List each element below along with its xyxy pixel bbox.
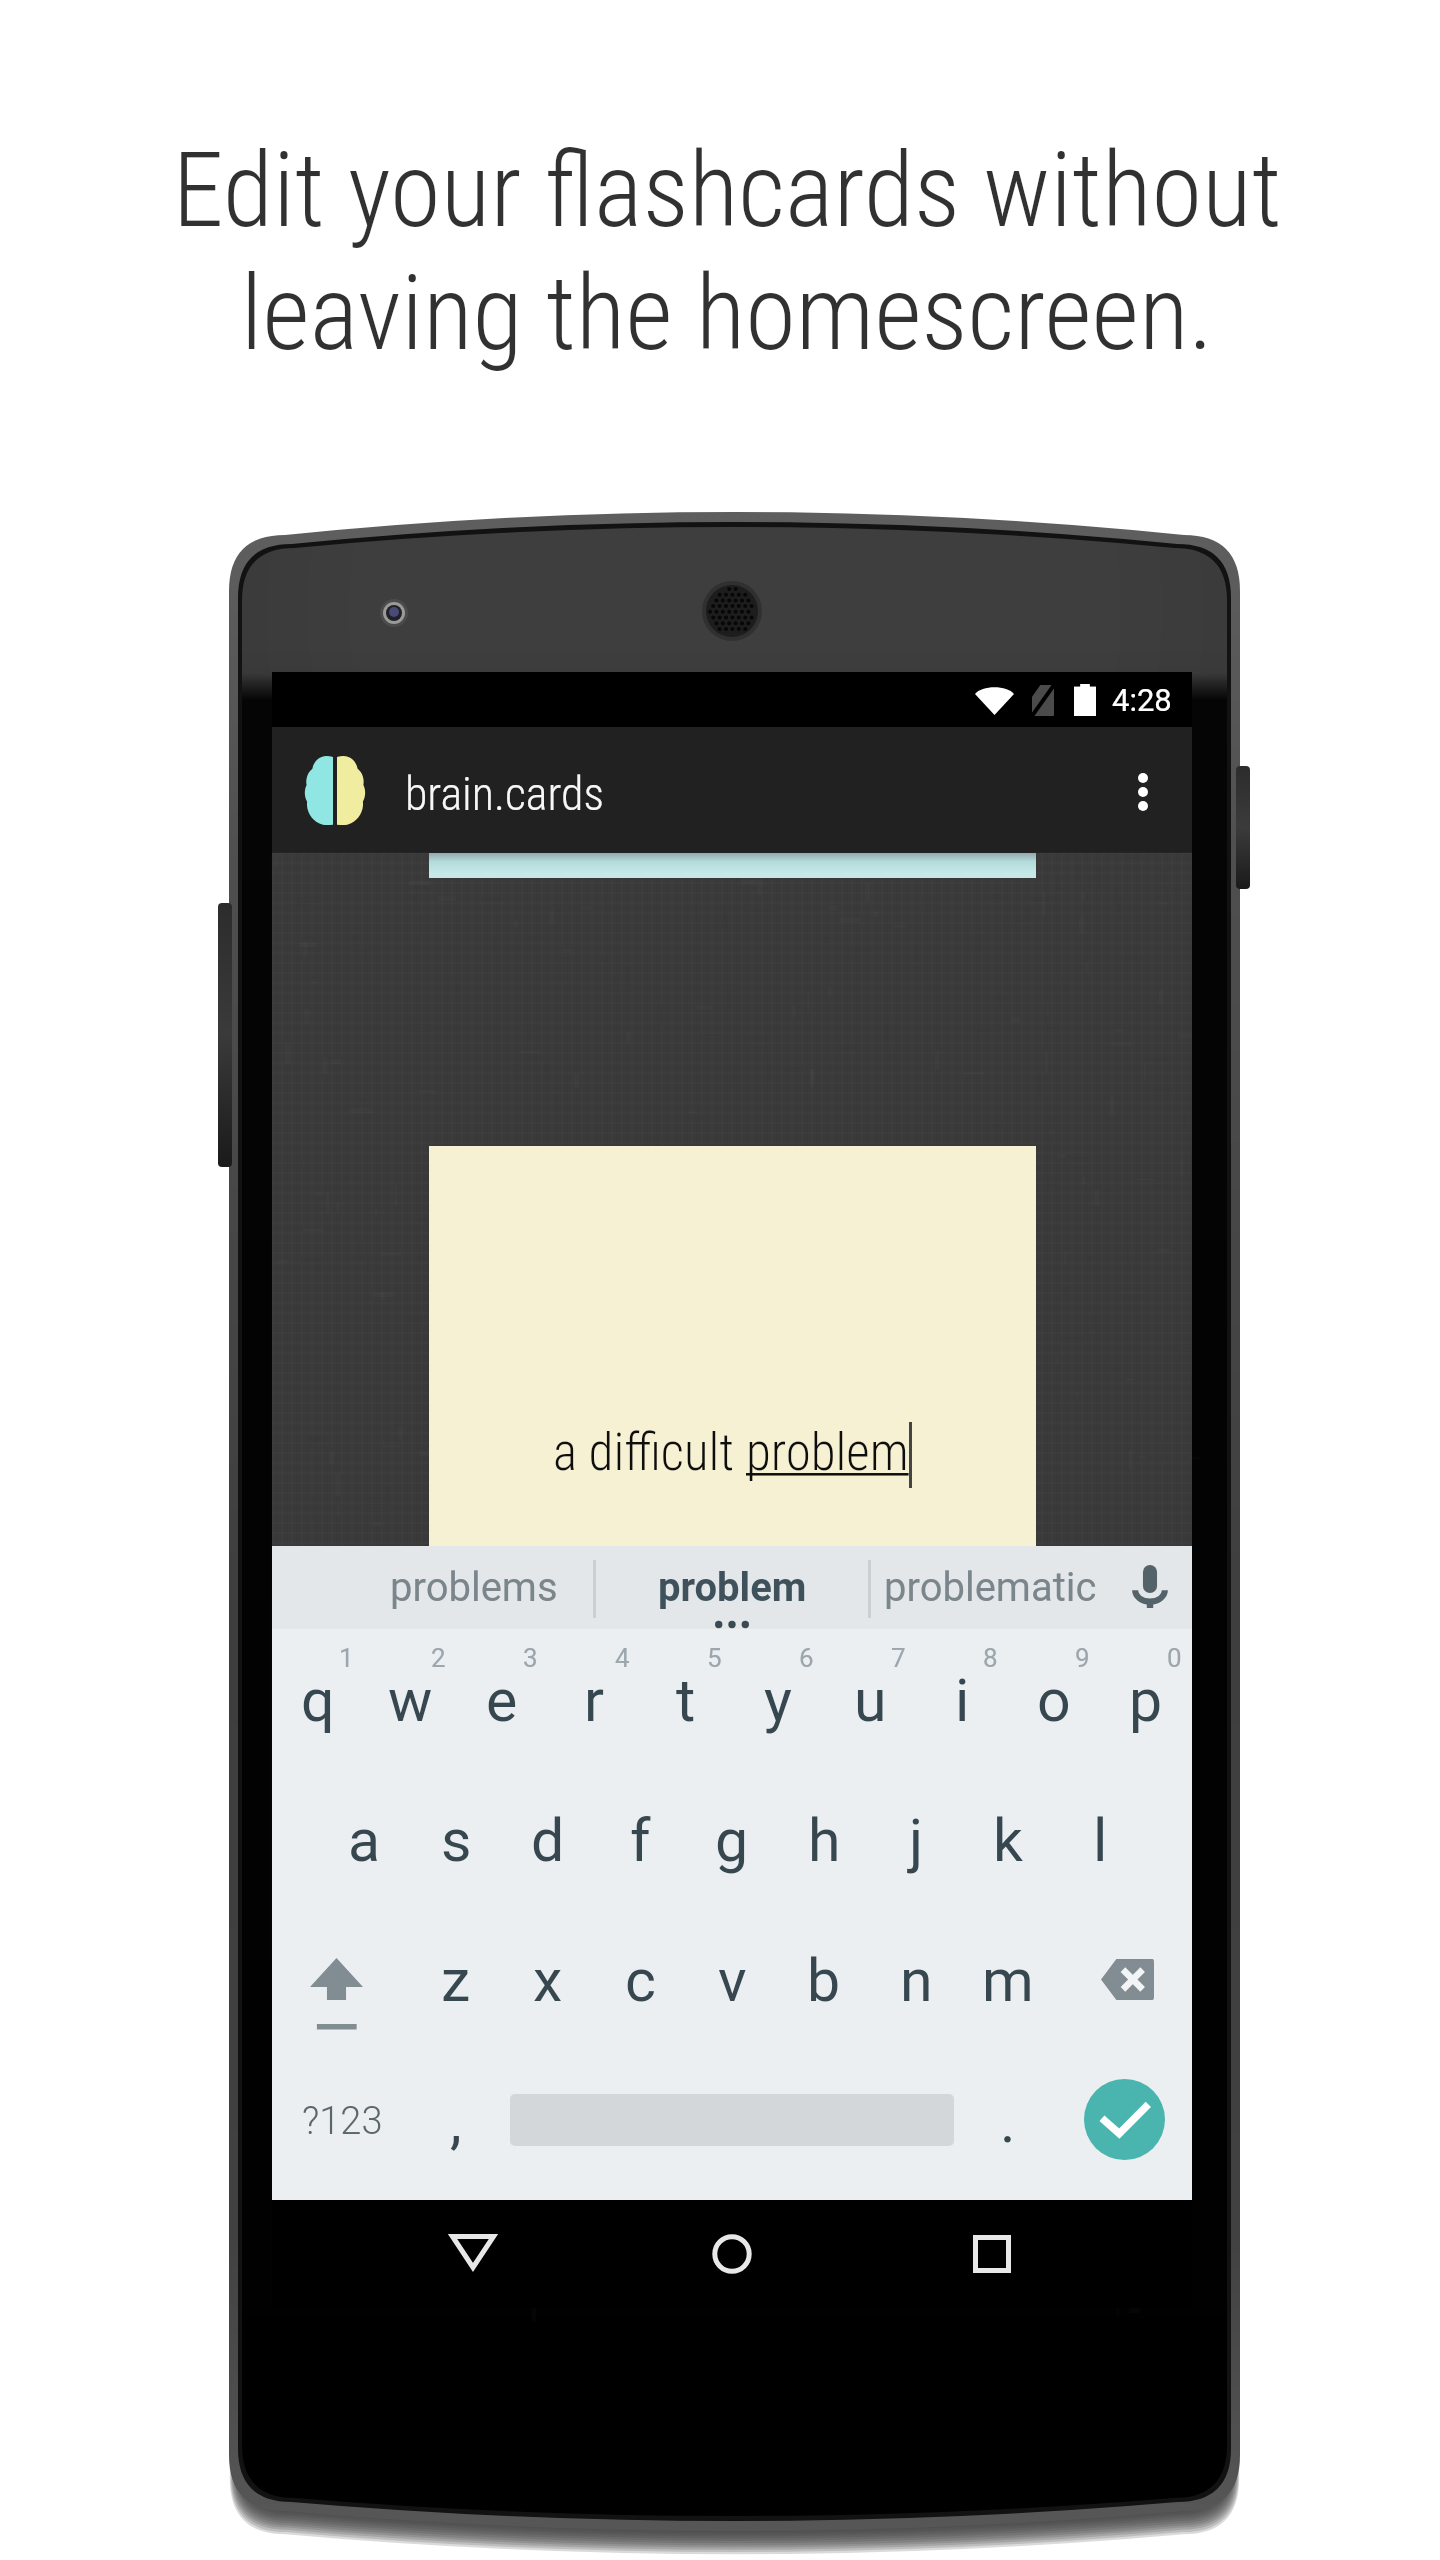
staticText: 8 [983,1643,998,1673]
button[interactable]: m [962,1909,1054,2052]
staticText: p [1129,1666,1163,1735]
button[interactable]: Enter [1050,2058,1198,2200]
button[interactable]: Home [672,2200,792,2308]
staticText: 1 [339,1643,354,1673]
staticText: h [808,1806,841,1875]
staticText: problems [390,1564,558,1611]
button[interactable]: n [870,1909,962,2052]
staticText: a difficult [553,1423,746,1483]
button[interactable]: f [594,1769,686,1912]
staticText: 5 [707,1643,722,1673]
button[interactable]: k [962,1769,1054,1912]
staticText: ?123 [302,2099,383,2144]
button[interactable]: , [410,2050,502,2192]
staticText: problematic [884,1564,1097,1611]
button[interactable]: w [364,1629,456,1772]
staticText: 2 [431,1643,446,1673]
staticText: u [854,1666,887,1735]
button[interactable]: Backspace [1054,1909,1192,2052]
staticText: problem [658,1564,807,1611]
staticText: f [630,1806,651,1875]
button[interactable]: c [594,1909,686,2052]
staticText: 7 [891,1643,906,1673]
staticText: g [715,1806,749,1875]
staticText: r [584,1666,604,1735]
button[interactable]: p [1100,1629,1192,1772]
button[interactable]: x [502,1909,594,2052]
button[interactable]: d [502,1769,594,1912]
staticText: d [531,1806,565,1875]
button[interactable]: Back [413,2200,533,2308]
staticText: a [348,1806,381,1875]
staticText: , [450,2087,462,2156]
staticText: z [441,1946,471,2015]
button[interactable]: g [686,1769,778,1912]
staticText: problem [746,1423,909,1483]
button[interactable]: u [824,1629,916,1772]
button[interactable]: problem [596,1546,868,1629]
button[interactable]: ?123 [272,2050,412,2192]
button[interactable]: o [1008,1629,1100,1772]
staticText: e [486,1666,518,1735]
button[interactable]: Shift [272,1909,410,2052]
button[interactable]: More options [1095,742,1191,838]
button[interactable]: problematic [871,1546,1109,1629]
staticText: b [807,1946,841,2015]
button[interactable]: e [456,1629,548,1772]
staticText: l [1093,1806,1108,1875]
button[interactable]: t [640,1629,732,1772]
button[interactable]: v [686,1909,778,2052]
button[interactable]: j [870,1769,962,1912]
button[interactable]: Recent apps [932,2200,1052,2308]
staticText: . [1000,2087,1016,2156]
staticText: 4:28 [1112,682,1172,718]
staticText: i [955,1666,970,1735]
staticText: s [441,1806,472,1875]
button[interactable]: q [272,1629,364,1772]
staticText: j [909,1806,924,1875]
staticText: y [764,1666,792,1735]
button[interactable]: h [778,1769,870,1912]
staticText: brain.cards [405,767,604,821]
button[interactable]: Space [510,2058,954,2200]
button[interactable]: a [318,1769,410,1912]
button[interactable]: a difficult [429,1146,1036,1558]
staticText: n [900,1946,933,2015]
staticText: t [676,1666,696,1735]
staticText: w [388,1666,433,1735]
staticText: 4 [615,1643,630,1673]
button[interactable]: i [916,1629,1008,1772]
staticText: o [1037,1666,1071,1735]
button[interactable]: l [1054,1769,1146,1912]
staticText: m [982,1946,1034,2015]
button[interactable]: b [778,1909,870,2052]
button[interactable]: s [410,1769,502,1912]
staticText: 0 [1167,1643,1182,1673]
staticText: x [533,1946,563,2015]
staticText: q [301,1666,335,1735]
button[interactable]: . [962,2050,1054,2192]
button[interactable]: Voice input [1109,1546,1191,1629]
button[interactable]: r [548,1629,640,1772]
button[interactable]: y [732,1629,824,1772]
staticText: c [625,1946,656,2015]
staticText: 9 [1075,1643,1090,1673]
button[interactable]: z [410,1909,502,2052]
button[interactable]: problems [354,1546,594,1629]
staticText: 3 [523,1643,538,1673]
staticText: k [993,1806,1023,1875]
staticText: 6 [799,1643,814,1673]
staticText: Edit your flashcards without leaving the… [172,130,1282,374]
staticText: v [718,1946,747,2015]
